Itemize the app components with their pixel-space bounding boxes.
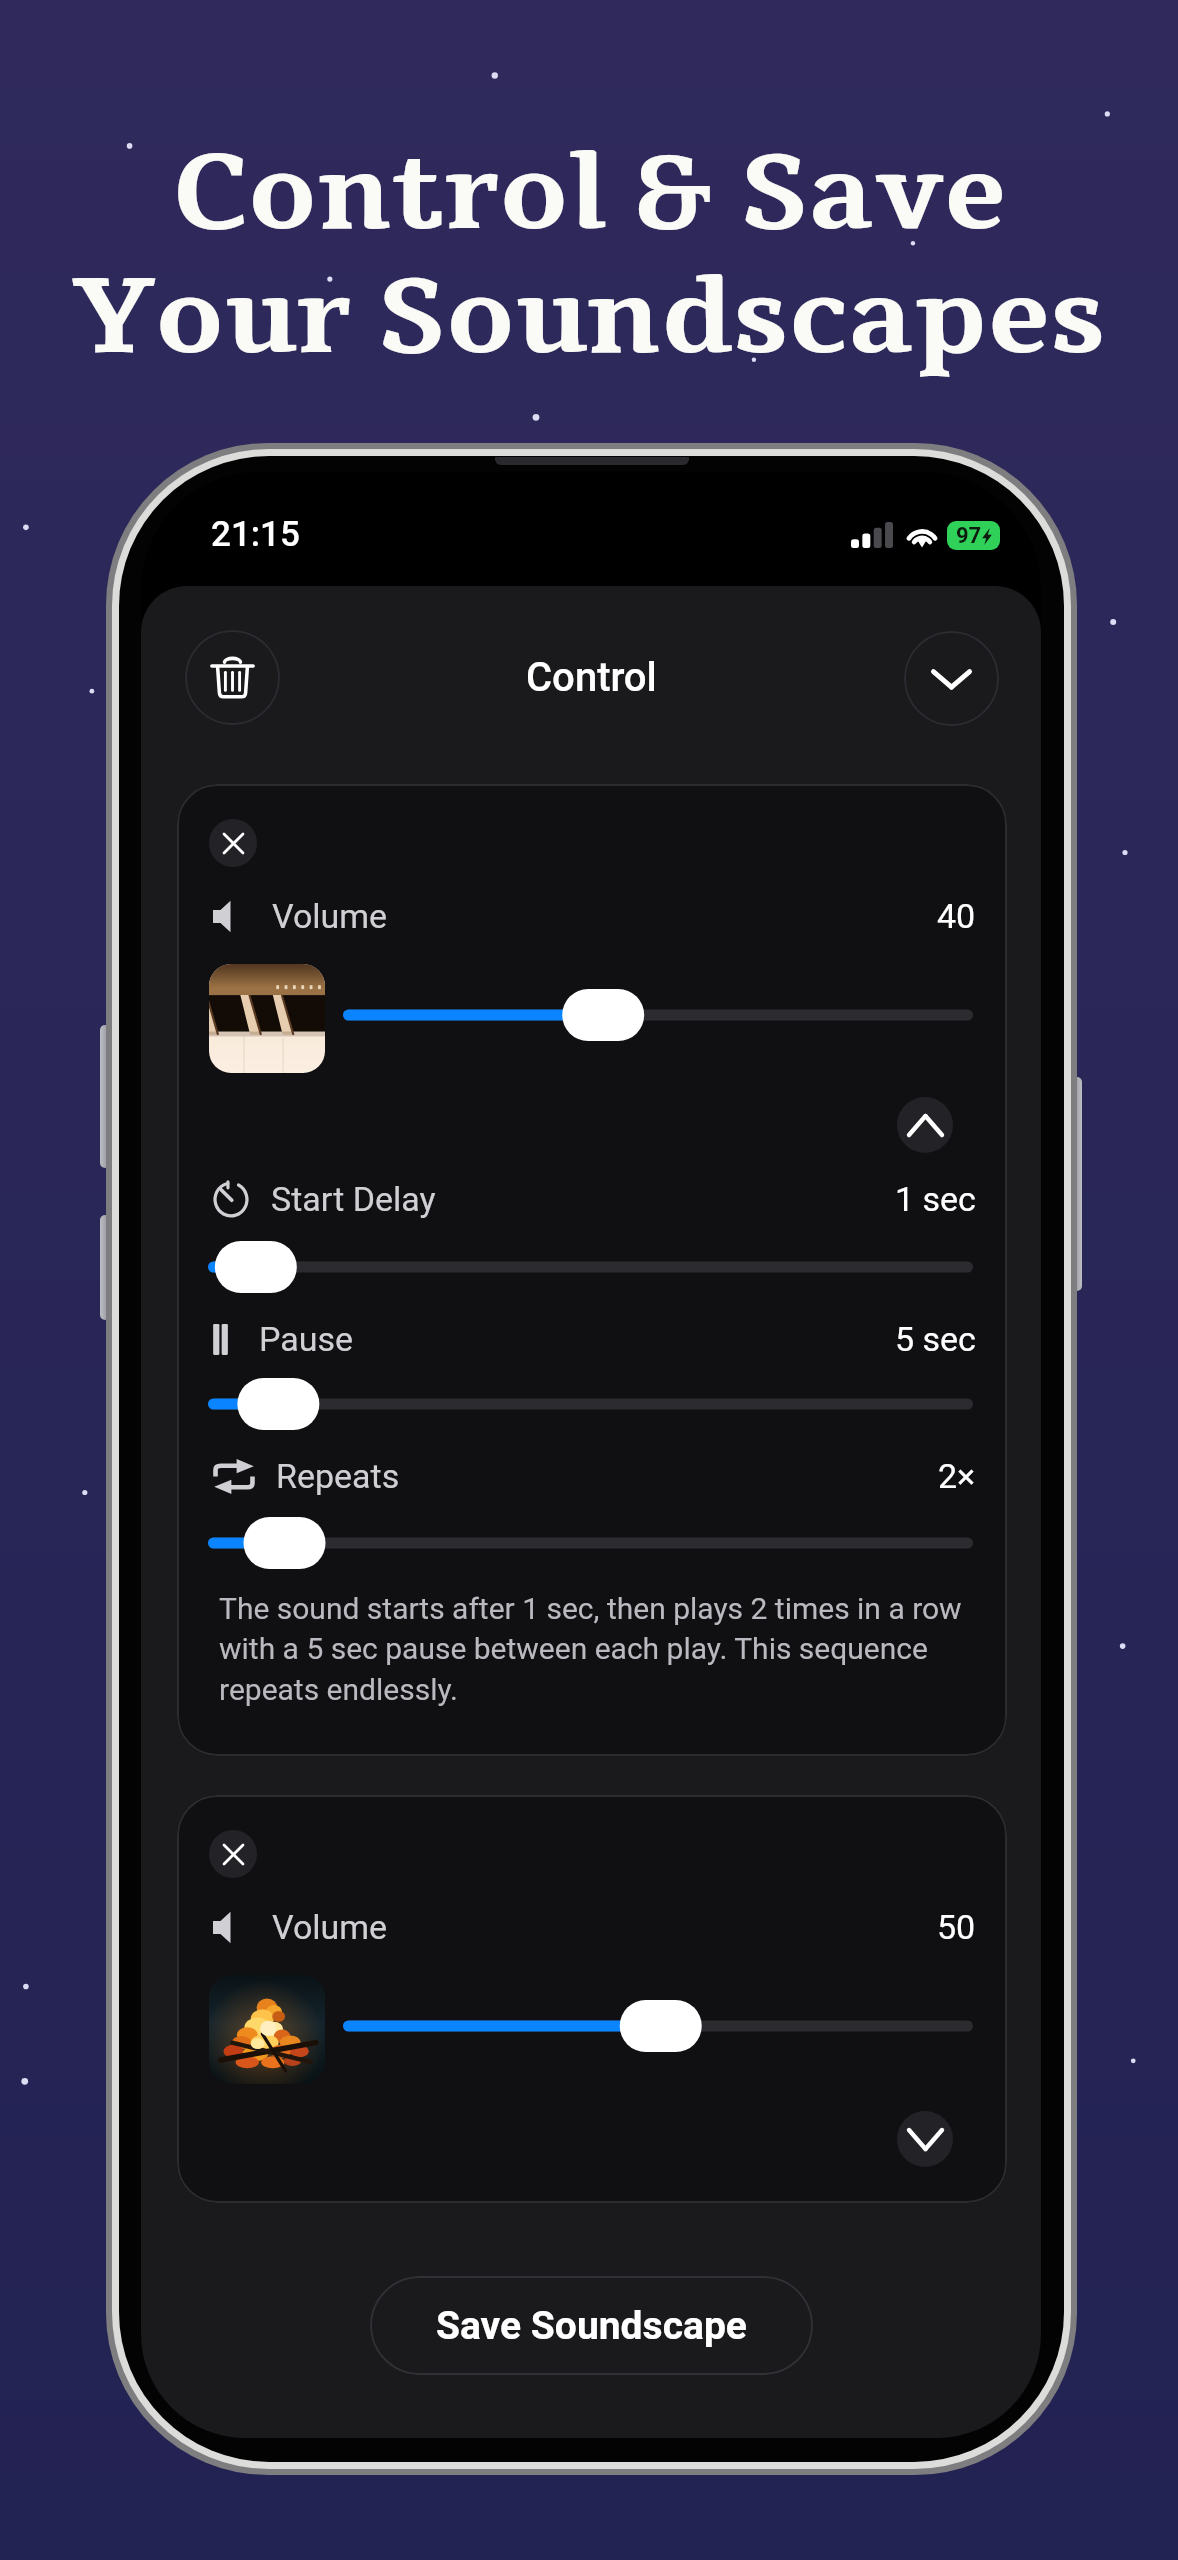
staticText: 1 sec [895,1179,976,1219]
button[interactable] [343,1998,973,2054]
button[interactable]: Remove sound [209,819,257,867]
button[interactable]: Expand details [897,2111,953,2167]
staticText: Control & Save [172,122,1007,266]
staticText: Pause [259,1319,354,1359]
staticText: 97 [956,523,982,549]
staticText: 21:15 [211,514,300,555]
staticText: Volume [272,1907,388,1947]
button[interactable]: Save Soundscape [370,2276,813,2375]
button[interactable]: Delete [185,630,280,725]
staticText: Your Soundscapes [72,246,1106,390]
staticText: Repeats [276,1456,400,1496]
button[interactable] [208,1239,973,1295]
staticText: 50 [937,1907,976,1947]
staticText: The sound starts after 1 sec, then plays… [219,1591,987,1708]
staticText: 2× [938,1456,976,1496]
staticText: Save Soundscape [436,2303,747,2349]
staticText: 5 sec [895,1319,976,1359]
button[interactable]: Collapse details [897,1097,953,1153]
button[interactable] [208,1515,973,1571]
button[interactable] [343,987,973,1043]
button[interactable]: Collapse [904,631,999,726]
staticText: Volume [272,896,388,936]
staticText: 40 [937,896,976,936]
staticText: Start Delay [271,1179,436,1219]
button[interactable]: Remove sound [209,1830,257,1878]
staticText: Control [526,654,657,701]
button[interactable] [208,1376,973,1432]
